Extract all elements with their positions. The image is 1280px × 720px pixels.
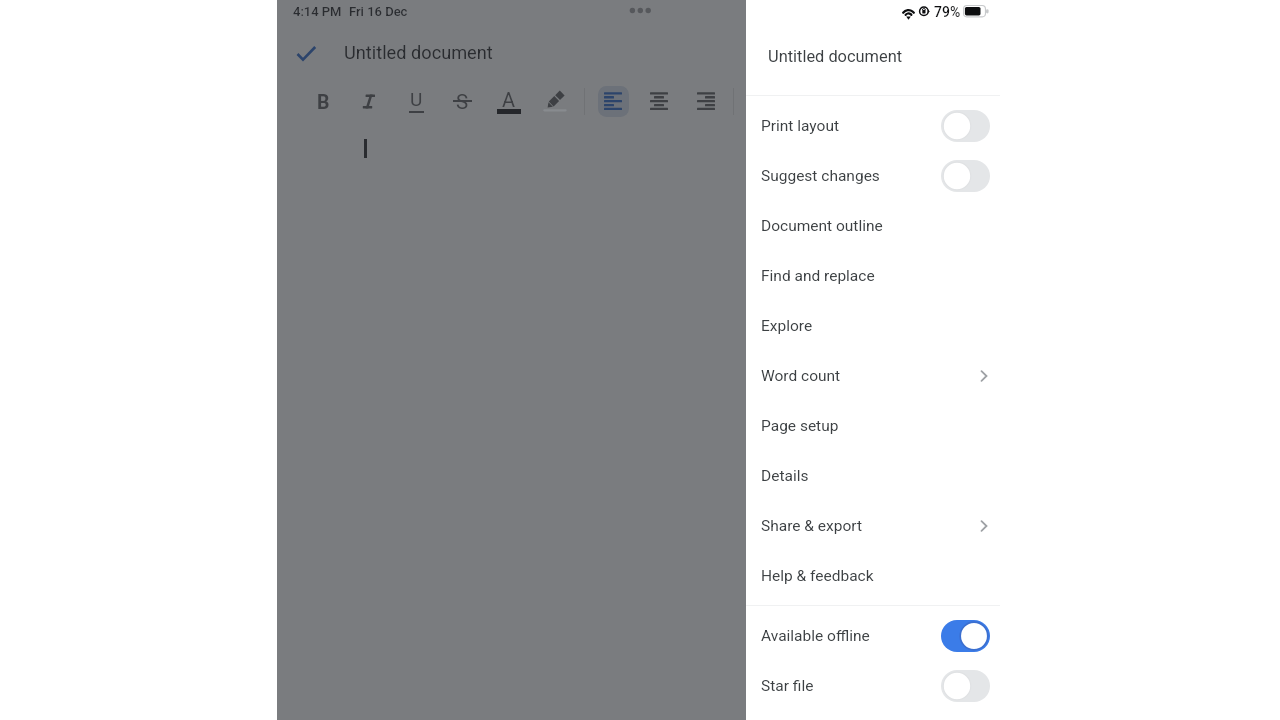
- button[interactable]: Align right: [683, 77, 729, 123]
- button[interactable]: Document outline: [746, 201, 1000, 251]
- button[interactable]: Print layout: [746, 101, 1000, 151]
- staticText: A: [502, 88, 516, 111]
- staticText: Page setup: [761, 417, 839, 435]
- button[interactable]: Available offline: [941, 620, 990, 652]
- button[interactable]: Details: [746, 451, 1000, 501]
- button[interactable]: Align centre: [636, 77, 682, 123]
- staticText: Available offline: [761, 627, 870, 645]
- staticText: B: [317, 91, 330, 114]
- staticText: 4:14 PM: [293, 4, 342, 19]
- button[interactable]: Suggest changes: [746, 151, 1000, 201]
- staticText: Help & feedback: [761, 567, 874, 585]
- button[interactable]: Untitled document: [768, 47, 903, 66]
- staticText: Details: [761, 467, 809, 485]
- staticText: U: [410, 88, 423, 110]
- staticText: Suggest changes: [761, 167, 880, 185]
- button[interactable]: Strikethrough: [439, 77, 485, 123]
- button[interactable]: Available offline: [746, 611, 1000, 661]
- staticText: Print layout: [761, 117, 840, 135]
- button[interactable]: Underline: [393, 77, 439, 123]
- button[interactable]: Find and replace: [746, 251, 1000, 301]
- staticText: 79%: [934, 4, 961, 20]
- staticText: Document outline: [761, 217, 883, 235]
- button[interactable]: Help & feedback: [746, 551, 1000, 601]
- staticText: Fri 16 Dec: [349, 4, 408, 19]
- staticText: Find and replace: [761, 267, 875, 285]
- button[interactable]: Untitled document: [344, 42, 493, 63]
- button[interactable]: Done: [292, 41, 322, 71]
- button[interactable]: Italic: [346, 77, 392, 123]
- staticText: Word count: [761, 367, 841, 385]
- staticText: Untitled document: [344, 42, 493, 63]
- button[interactable]: Text colour: [486, 77, 532, 123]
- staticText: S: [456, 90, 469, 114]
- button[interactable]: Explore: [746, 301, 1000, 351]
- button[interactable]: Share & export: [746, 501, 1000, 551]
- button[interactable]: Word count: [746, 351, 1000, 401]
- button[interactable]: Highlight colour: [533, 77, 579, 123]
- button[interactable]: Star file: [941, 670, 990, 702]
- staticText: Share & export: [761, 517, 862, 535]
- button[interactable]: Print layout: [941, 110, 990, 142]
- button[interactable]: Suggest changes: [941, 160, 990, 192]
- button[interactable]: More options: [626, 2, 654, 22]
- staticText: Explore: [761, 317, 813, 335]
- staticText: Untitled document: [768, 47, 903, 66]
- staticText: Star file: [761, 677, 814, 695]
- button[interactable]: Bold: [300, 77, 346, 123]
- button[interactable]: Star file: [746, 661, 1000, 711]
- button[interactable]: Page setup: [746, 401, 1000, 451]
- button[interactable]: Align left: [590, 77, 636, 123]
